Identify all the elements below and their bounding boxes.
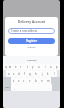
button[interactable]: t xyxy=(24,63,30,70)
staticText: w xyxy=(9,65,12,69)
button[interactable]: c xyxy=(21,77,27,84)
staticText: Create a new address xyxy=(11,29,38,33)
staticText: h xyxy=(35,72,37,76)
staticText: o xyxy=(50,65,52,69)
staticText: q xyxy=(5,65,7,69)
button[interactable]: l xyxy=(51,70,57,77)
button[interactable]: y xyxy=(30,63,36,70)
staticText: i xyxy=(45,65,46,69)
button[interactable]: m xyxy=(45,77,51,84)
staticText: c xyxy=(23,79,25,83)
staticText: . xyxy=(49,86,50,90)
button[interactable]: h xyxy=(33,70,39,77)
button[interactable]: j xyxy=(39,70,45,77)
staticText: g xyxy=(29,72,31,76)
button[interactable]: i xyxy=(42,63,48,70)
button[interactable]: v xyxy=(27,77,33,84)
staticText: e xyxy=(15,65,17,69)
button[interactable]: d xyxy=(16,70,21,77)
staticText: f xyxy=(24,72,25,76)
staticText: Delivery Account xyxy=(5,19,58,24)
button[interactable]: f xyxy=(21,70,27,77)
button[interactable]: r xyxy=(18,63,24,70)
button[interactable]: Register xyxy=(8,38,55,44)
staticText: v xyxy=(29,79,31,83)
button[interactable]: s xyxy=(11,70,16,77)
button[interactable]: a xyxy=(6,70,11,77)
staticText: n xyxy=(41,79,43,83)
staticText: l xyxy=(54,72,55,76)
button[interactable]: x xyxy=(16,77,21,84)
staticText: y xyxy=(32,65,34,69)
staticText: ?123 xyxy=(5,86,10,89)
button[interactable]: k xyxy=(45,70,51,77)
button[interactable]: q xyxy=(3,63,8,70)
button[interactable]: Create a new address xyxy=(8,28,55,34)
staticText: x xyxy=(18,79,20,83)
staticText: s xyxy=(13,72,15,76)
staticText: a xyxy=(8,72,10,76)
staticText: Register xyxy=(26,39,38,43)
button[interactable]: u xyxy=(36,63,42,70)
button[interactable]: , xyxy=(11,84,17,91)
staticText: b xyxy=(35,79,37,83)
button[interactable]: Symbols xyxy=(3,84,11,91)
button[interactable]: w xyxy=(8,63,13,70)
staticText: z xyxy=(13,79,15,83)
staticText: p xyxy=(56,65,58,69)
staticText: Tuesday xyxy=(27,58,37,61)
button[interactable]: b xyxy=(33,77,39,84)
staticText: r xyxy=(20,65,22,69)
staticText: Cancel xyxy=(5,45,58,48)
staticText: d xyxy=(18,72,20,76)
staticText: k xyxy=(47,72,49,76)
button[interactable]: . xyxy=(46,84,52,91)
staticText: m xyxy=(47,79,50,83)
staticText: j xyxy=(42,72,43,76)
button[interactable]: p xyxy=(54,63,60,70)
button[interactable]: n xyxy=(39,77,45,84)
staticText: , xyxy=(14,86,15,90)
staticText: t xyxy=(27,65,28,69)
button[interactable]: o xyxy=(48,63,54,70)
staticText: u xyxy=(38,65,40,69)
button[interactable]: g xyxy=(27,70,33,77)
button[interactable]: e xyxy=(13,63,18,70)
button[interactable]: z xyxy=(11,77,16,84)
